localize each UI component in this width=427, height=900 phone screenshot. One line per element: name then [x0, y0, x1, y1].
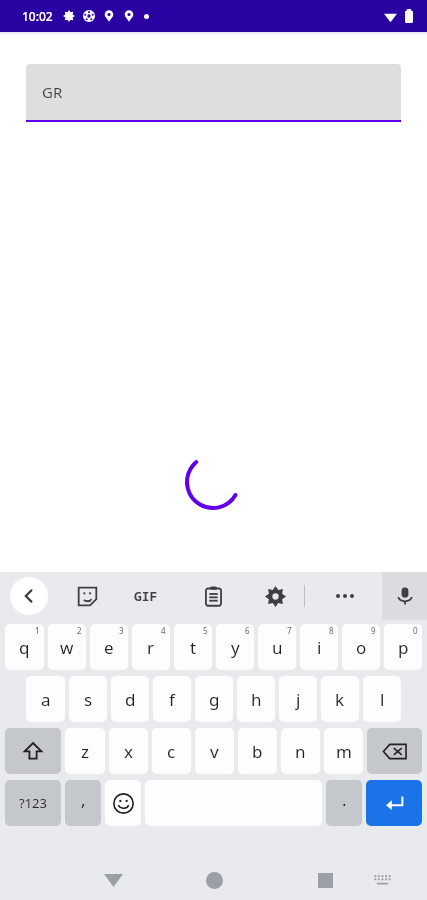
button[interactable]: v — [195, 728, 234, 774]
staticText: GIF — [134, 587, 158, 605]
staticText: g — [209, 688, 220, 711]
staticText: 7 — [287, 625, 292, 636]
button[interactable]: ?123 — [5, 780, 61, 826]
button[interactable]: Recent apps — [300, 860, 350, 900]
staticText: s — [84, 688, 93, 711]
staticText: v — [210, 740, 219, 763]
button[interactable]: Enter — [366, 780, 422, 826]
button[interactable]: j — [279, 676, 317, 722]
staticText: k — [335, 688, 345, 711]
button[interactable]: o — [342, 624, 380, 670]
staticText: 3 — [119, 625, 124, 636]
staticText: w — [60, 636, 74, 659]
button[interactable]: h — [237, 676, 275, 722]
button[interactable]: Voice input — [382, 572, 427, 620]
button[interactable]: u — [258, 624, 296, 670]
staticText: d — [125, 688, 136, 711]
staticText: p — [398, 636, 409, 659]
button[interactable]: GIF — [126, 586, 166, 606]
staticText: z — [81, 740, 89, 763]
staticText: y — [231, 636, 240, 659]
button[interactable]: n — [281, 728, 320, 774]
button[interactable]: b — [238, 728, 277, 774]
staticText: b — [252, 740, 263, 763]
staticText: m — [336, 740, 352, 763]
button[interactable]: Switch keyboard — [360, 860, 404, 900]
button[interactable]: a — [26, 676, 65, 722]
staticText: i — [317, 636, 322, 659]
button[interactable]: , — [65, 780, 101, 826]
button[interactable]: . — [326, 780, 362, 826]
staticText: 2 — [77, 625, 82, 636]
staticText: . — [342, 788, 347, 811]
button[interactable]: More — [326, 577, 364, 615]
button[interactable]: c — [152, 728, 191, 774]
staticText: 8 — [329, 625, 334, 636]
button[interactable]: q — [5, 624, 44, 670]
staticText: 10:02 — [22, 8, 53, 24]
button[interactable]: GR — [26, 64, 401, 122]
staticText: o — [356, 636, 367, 659]
button[interactable]: Back — [88, 860, 138, 900]
button[interactable]: Shift — [5, 728, 61, 774]
staticText: a — [41, 688, 51, 711]
button[interactable]: Emoji — [105, 780, 141, 826]
button[interactable]: y — [216, 624, 254, 670]
button[interactable]: Back — [10, 577, 48, 615]
staticText: n — [295, 740, 306, 763]
button[interactable]: d — [111, 676, 149, 722]
staticText: 0 — [413, 625, 418, 636]
button[interactable]: r — [132, 624, 170, 670]
staticText: ?123 — [19, 794, 47, 812]
staticText: x — [124, 740, 133, 763]
button[interactable]: t — [174, 624, 212, 670]
staticText: , — [81, 788, 86, 811]
button[interactable]: Home — [190, 860, 238, 900]
staticText: 4 — [161, 625, 166, 636]
button[interactable]: g — [195, 676, 233, 722]
button[interactable]: x — [109, 728, 148, 774]
button[interactable]: m — [324, 728, 363, 774]
staticText: j — [296, 688, 301, 711]
button[interactable]: z — [65, 728, 105, 774]
button[interactable]: e — [90, 624, 128, 670]
button[interactable]: l — [363, 676, 401, 722]
button[interactable]: s — [69, 676, 107, 722]
staticText: h — [251, 688, 262, 711]
staticText: q — [19, 636, 30, 659]
staticText: t — [190, 636, 197, 659]
staticText: u — [272, 636, 283, 659]
staticText: f — [169, 688, 175, 711]
button[interactable]: Clipboard — [194, 577, 232, 615]
staticText: 5 — [203, 625, 208, 636]
staticText: 1 — [35, 625, 40, 636]
staticText: c — [167, 740, 176, 763]
staticText: e — [104, 636, 114, 659]
button[interactable]: p — [384, 624, 422, 670]
button[interactable]: k — [321, 676, 359, 722]
staticText: GR — [42, 82, 63, 102]
button[interactable]: w — [48, 624, 86, 670]
button[interactable]: f — [153, 676, 191, 722]
button[interactable]: Sticker — [68, 577, 106, 615]
button[interactable]: Backspace — [367, 728, 422, 774]
button[interactable]: Settings — [256, 577, 294, 615]
button[interactable]: i — [300, 624, 338, 670]
staticText: 6 — [245, 625, 250, 636]
staticText: 9 — [371, 625, 376, 636]
staticText: r — [147, 636, 155, 659]
staticText: l — [380, 688, 385, 711]
